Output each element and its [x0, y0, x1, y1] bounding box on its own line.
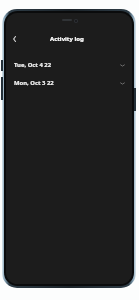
staticText: Activity log — [50, 35, 84, 43]
staticText: Mon, Oct 3 22 — [14, 79, 54, 87]
staticText: Tue, Oct 4 22 — [14, 61, 52, 69]
button[interactable]: Tue, Oct 4 22 — [6, 56, 132, 74]
button[interactable]: Back — [8, 31, 21, 46]
button[interactable]: Mon, Oct 3 22 — [6, 74, 132, 92]
